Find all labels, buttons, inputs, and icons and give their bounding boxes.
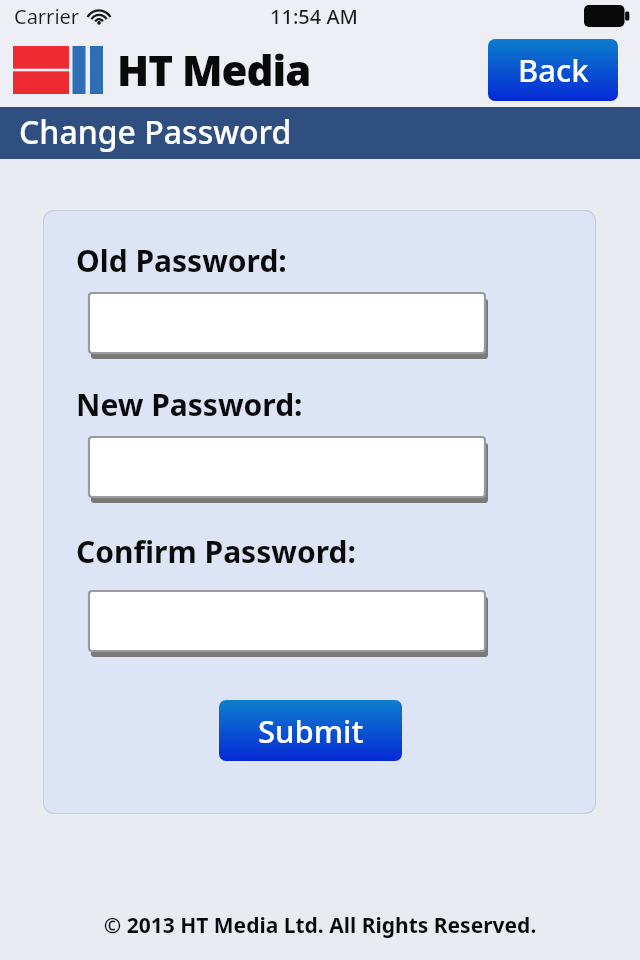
staticText: © 2013 HT Media Ltd. All Rights Reserved… [0, 911, 640, 940]
button[interactable]: Submit [219, 700, 402, 761]
button[interactable]: Back [488, 39, 618, 101]
button[interactable]: Password input [89, 591, 488, 657]
staticText: Carrier [14, 3, 80, 30]
staticText: Back [518, 49, 589, 91]
staticText: HT Media [117, 41, 311, 98]
staticText: Old Password: [76, 240, 287, 281]
staticText: 11:54 AM [270, 3, 358, 30]
button[interactable]: Password input [89, 293, 488, 359]
button[interactable]: Password input [89, 437, 488, 503]
staticText: New Password: [76, 384, 303, 425]
staticText: Confirm Password: [76, 531, 356, 572]
staticText: Submit [258, 710, 364, 752]
staticText: Change Password [19, 110, 292, 154]
